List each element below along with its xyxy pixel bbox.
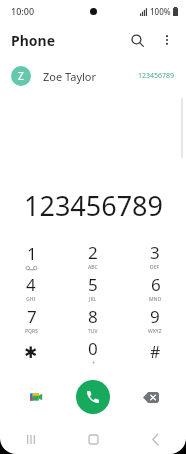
staticText: + — [92, 360, 95, 367]
staticText: 123456789 — [138, 71, 175, 81]
staticText: 123456789 — [24, 187, 163, 224]
staticText: TUV — [88, 328, 98, 335]
staticText: 100% — [150, 6, 171, 17]
staticText: 7 — [27, 305, 37, 328]
button[interactable]: Home — [62, 424, 124, 454]
staticText: 0 — [88, 337, 98, 360]
staticText: 4 — [26, 273, 36, 296]
button[interactable]: Back — [124, 424, 186, 454]
staticText: 3 — [150, 241, 160, 264]
button[interactable]: 2 — [62, 240, 124, 272]
staticText: GHI — [26, 296, 36, 303]
staticText: PQRS — [25, 328, 38, 335]
button[interactable]: 4 — [0, 272, 62, 304]
button[interactable]: Video call with Meet — [22, 383, 50, 411]
button[interactable]: 5 — [62, 272, 124, 304]
button[interactable]: Search — [122, 25, 152, 55]
button[interactable]: 9 — [124, 304, 186, 336]
button[interactable]: # — [124, 336, 186, 368]
staticText: Z — [18, 69, 24, 83]
button[interactable]: 3 — [124, 240, 186, 272]
button[interactable]: Z — [0, 58, 186, 94]
button[interactable]: 8 — [62, 304, 124, 336]
staticText: JKL — [89, 296, 97, 303]
staticText: 9 — [150, 305, 160, 328]
staticText: Phone — [11, 31, 56, 50]
staticText: 8 — [88, 305, 98, 328]
staticText: Zoe Taylor — [43, 69, 97, 84]
staticText: 5 — [88, 273, 98, 296]
button[interactable]: 1 — [0, 240, 62, 272]
staticText: DEF — [150, 264, 160, 271]
button[interactable]: 0 — [62, 336, 124, 368]
staticText: WXYZ — [148, 328, 162, 335]
button[interactable]: Recent apps — [0, 424, 62, 454]
button[interactable]: Call — [76, 380, 110, 414]
staticText: ABC — [88, 264, 98, 271]
button[interactable]: Backspace — [136, 382, 166, 412]
staticText: ✱ — [24, 343, 38, 362]
button[interactable]: ✱ — [0, 336, 62, 368]
staticText: 6 — [151, 273, 161, 296]
button[interactable]: 7 — [0, 304, 62, 336]
staticText: 1 — [27, 242, 37, 265]
button[interactable]: More options — [152, 25, 182, 55]
staticText: MNO — [149, 296, 162, 303]
staticText: 2 — [88, 241, 98, 264]
staticText: # — [150, 341, 161, 363]
staticText: 10:00 — [11, 5, 35, 17]
button[interactable]: 6 — [124, 272, 186, 304]
